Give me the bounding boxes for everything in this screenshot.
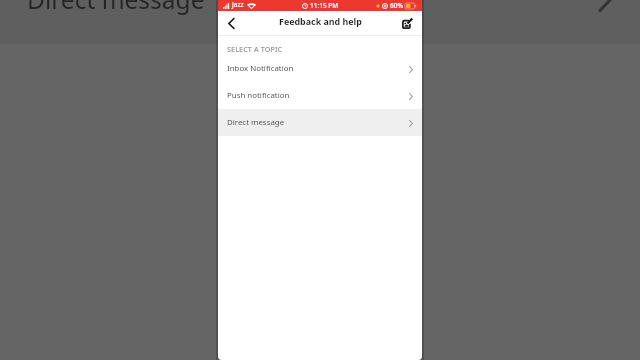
button[interactable]: Compose	[396, 11, 422, 35]
button[interactable]: Back	[218, 11, 244, 35]
button[interactable]: Push notification	[218, 82, 422, 109]
staticText: Feedback and help	[279, 15, 362, 27]
staticText: Jazz	[232, 0, 244, 9]
staticText: Push notification	[227, 90, 290, 101]
staticText: Direct message	[27, 0, 205, 16]
staticText: 11:15 PM	[310, 1, 339, 10]
staticText: Inbox Notification	[227, 63, 294, 74]
button[interactable]: Direct message	[218, 109, 422, 136]
button[interactable]: Inbox Notification	[218, 55, 422, 82]
staticText: SELECT A TOPIC	[227, 44, 283, 54]
staticText: Direct message	[227, 117, 285, 128]
staticText: 60%	[390, 1, 403, 10]
